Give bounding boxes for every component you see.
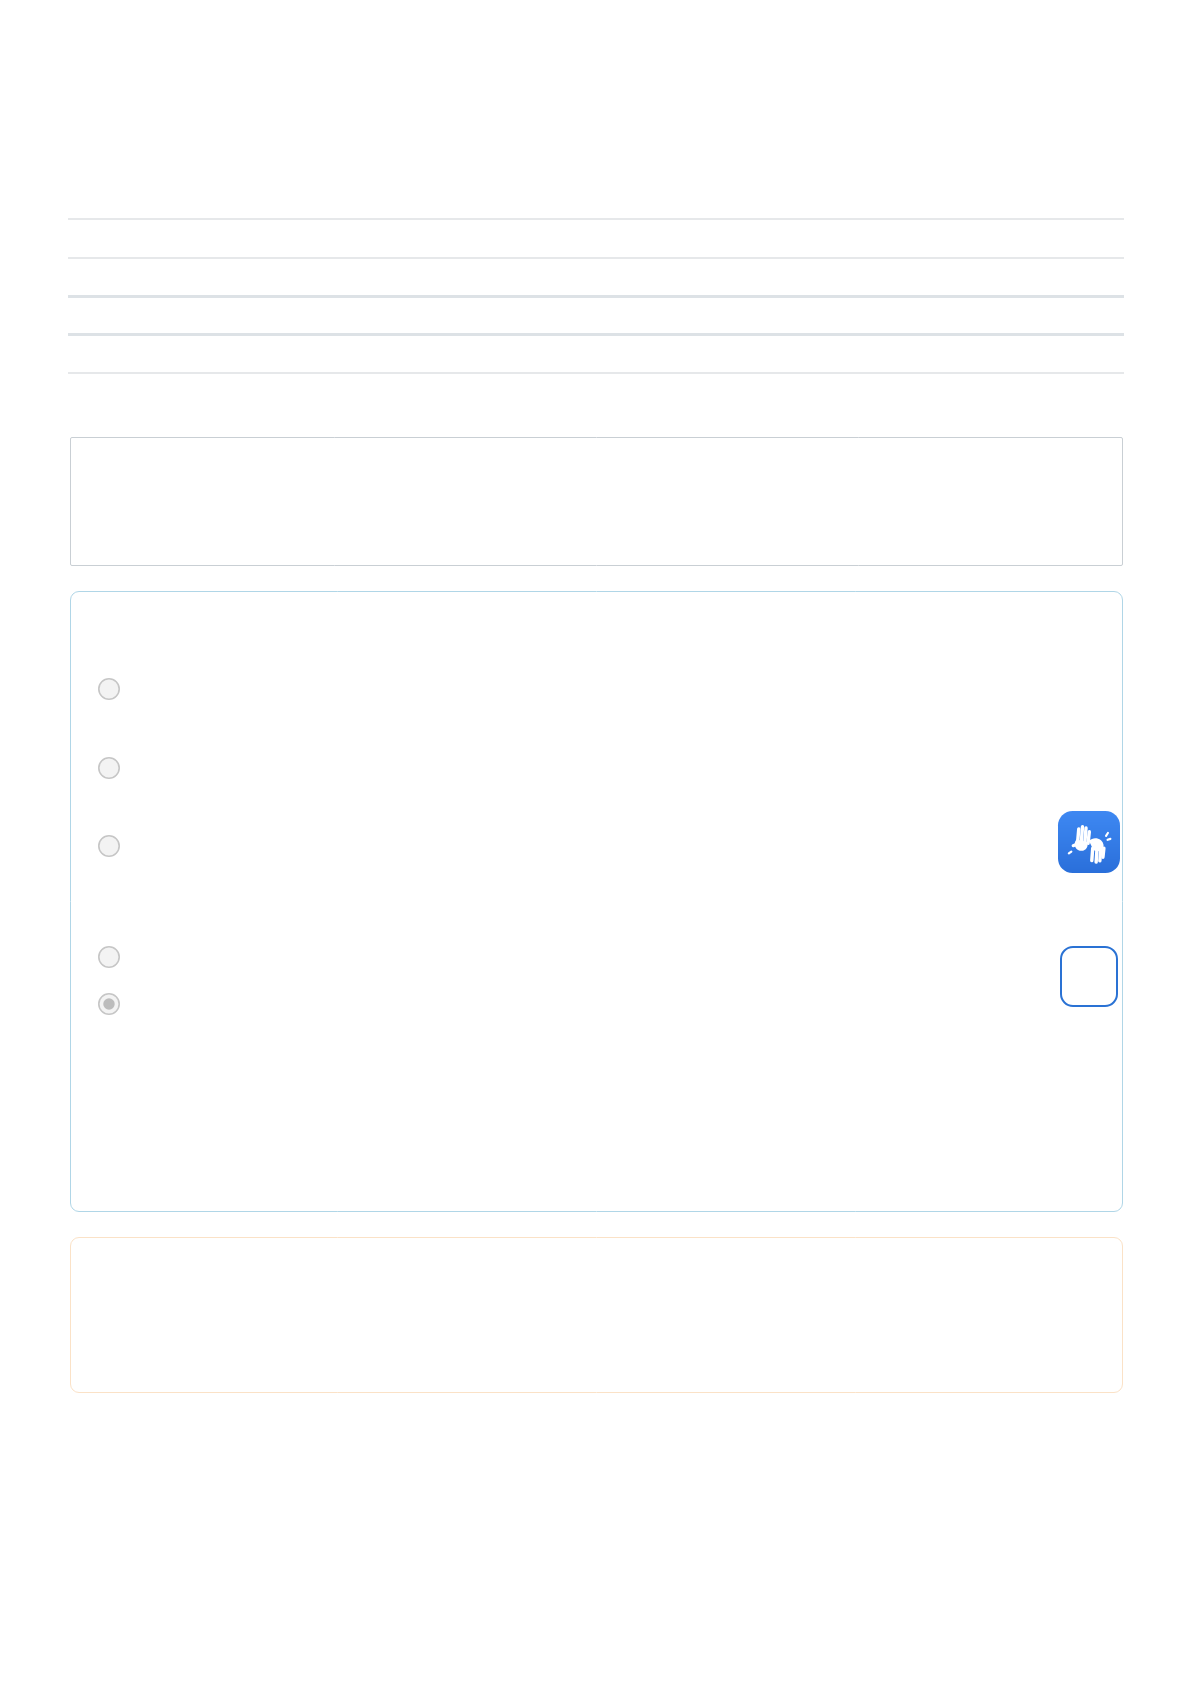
button[interactable]: Option (98, 946, 120, 968)
button[interactable]: Option (98, 678, 120, 700)
button[interactable] (70, 1237, 1123, 1393)
button[interactable]: Open tool (1060, 946, 1118, 1007)
button[interactable]: Sign language (1058, 811, 1120, 873)
button[interactable]: Option (98, 835, 120, 857)
button[interactable]: Selected option (98, 993, 120, 1015)
button[interactable]: Option (98, 757, 120, 779)
button[interactable] (70, 437, 1123, 566)
